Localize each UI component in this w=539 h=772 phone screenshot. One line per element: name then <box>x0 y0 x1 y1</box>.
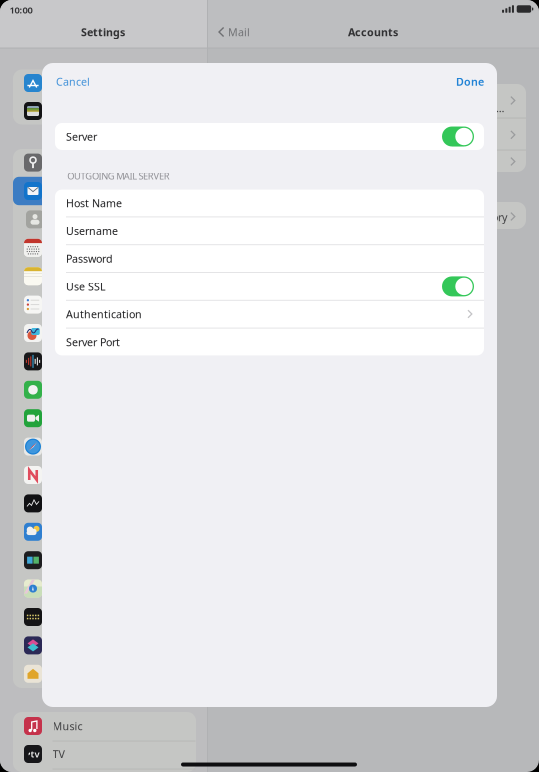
staticText: Settings <box>81 25 125 39</box>
staticText: Use SSL <box>66 279 106 293</box>
button[interactable]: Host Name <box>55 190 484 216</box>
button[interactable]: Done <box>449 66 491 97</box>
button[interactable]: Server <box>55 123 484 150</box>
staticText: Accounts <box>348 25 398 39</box>
staticText: Host Name <box>66 196 122 210</box>
button[interactable]: Music <box>13 712 196 740</box>
button[interactable]: Mail <box>212 18 256 46</box>
staticText: 10:00 <box>9 4 32 16</box>
button[interactable]: Authentication <box>55 301 484 328</box>
staticText: TV <box>52 747 64 761</box>
staticText: Server <box>66 129 97 144</box>
staticText: Mail <box>228 25 250 39</box>
staticText: Cancel <box>56 74 90 89</box>
staticText: iCloud Drive, Contacts, Calendars, Safar… <box>266 101 508 115</box>
staticText: Authentication <box>66 307 142 321</box>
staticText: Password <box>66 251 113 266</box>
staticText: tv <box>30 748 39 760</box>
button[interactable]: TV <box>13 740 196 768</box>
button[interactable]: Use SSL <box>55 273 484 300</box>
button[interactable]: Password <box>55 245 484 272</box>
staticText: Done <box>456 74 484 89</box>
staticText: Music <box>52 719 82 733</box>
button[interactable]: Server Port <box>55 329 484 355</box>
staticText: Mail, Contacts, Calendars, Notes, Memory <box>296 210 507 224</box>
button[interactable]: Username <box>55 217 484 244</box>
button[interactable]: Cancel <box>49 66 97 97</box>
staticText: Username <box>66 224 118 238</box>
staticText: Server Port <box>66 335 120 349</box>
staticText: OUTGOING MAIL SERVER <box>67 170 170 182</box>
